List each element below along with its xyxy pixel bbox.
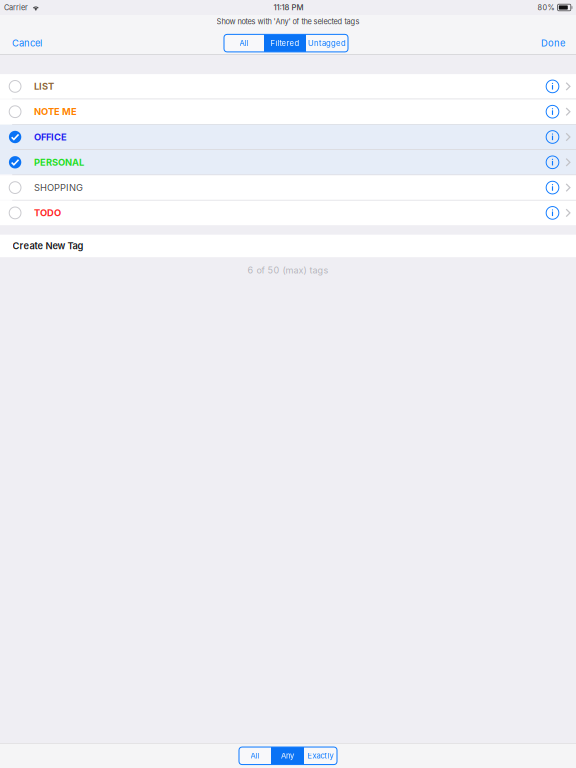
staticText: Create New Tag [12, 240, 83, 252]
staticText: NOTE ME [34, 106, 77, 117]
staticText: Untagged [308, 38, 346, 48]
button[interactable]: Exactly [304, 747, 337, 765]
button[interactable]: Filtered [264, 34, 306, 52]
staticText: SHOPPING [34, 182, 83, 193]
button[interactable]: Untagged [306, 34, 348, 52]
button[interactable]: TODO [0, 201, 576, 225]
button[interactable]: All [224, 34, 264, 52]
staticText: Show notes with 'Any' of the selected ta… [216, 17, 359, 26]
staticText: TODO [34, 207, 61, 219]
button[interactable]: Cancel [0, 37, 42, 49]
staticText: All [239, 38, 248, 48]
staticText: 80% [538, 3, 555, 12]
staticText: PERSONAL [34, 157, 84, 168]
button[interactable]: OFFICE [0, 125, 576, 149]
button[interactable]: Done [541, 37, 576, 49]
staticText: All [250, 751, 259, 760]
staticText: Carrier [4, 3, 28, 12]
staticText: Cancel [12, 37, 42, 49]
staticText: 11:18 PM [274, 3, 304, 12]
staticText: Exactly [307, 751, 333, 760]
staticText: Filtered [270, 38, 299, 48]
staticText: 6 of 50 (max) tags [247, 265, 328, 276]
staticText: Done [541, 37, 565, 49]
button[interactable]: All [239, 747, 271, 765]
button[interactable]: SHOPPING [0, 175, 576, 200]
button[interactable]: NOTE ME [0, 99, 576, 124]
button[interactable]: PERSONAL [0, 150, 576, 175]
button[interactable]: Any [271, 747, 304, 765]
staticText: OFFICE [34, 131, 67, 143]
button[interactable]: Create New Tag [0, 235, 576, 257]
button[interactable]: LIST [0, 74, 576, 99]
staticText: LIST [34, 81, 54, 92]
staticText: Any [281, 751, 294, 760]
